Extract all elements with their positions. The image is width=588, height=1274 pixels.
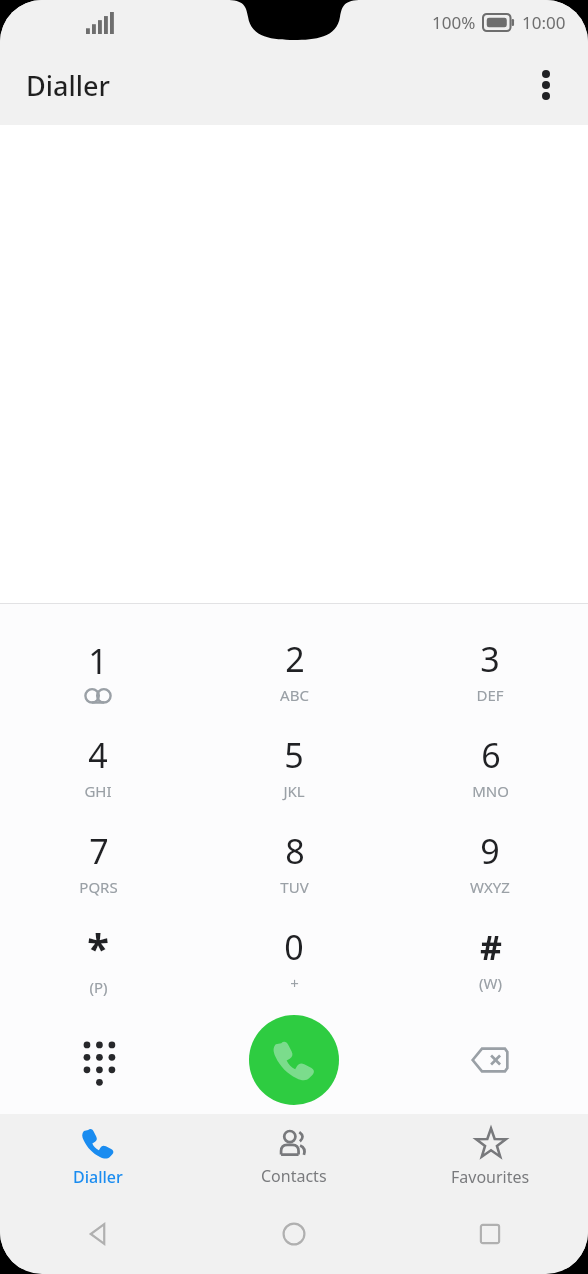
staticText: 1 (88, 638, 108, 684)
staticText: 10:00 (522, 11, 566, 34)
staticText: Dialler (73, 1166, 123, 1188)
staticText: 3 (480, 636, 500, 682)
staticText: (W) (479, 973, 502, 993)
staticText: 4 (88, 732, 108, 778)
button[interactable]: 3 (392, 622, 588, 718)
button[interactable]: 6 (392, 718, 588, 814)
staticText: # (480, 924, 502, 970)
staticText: 8 (285, 828, 305, 874)
staticText: 6 (481, 732, 501, 778)
staticText: 9 (480, 828, 500, 874)
button[interactable]: 1 (0, 622, 196, 718)
button[interactable]: Recent apps (392, 1199, 588, 1269)
button[interactable]: Dialler (0, 1114, 196, 1199)
button[interactable]: 8 (196, 814, 392, 910)
staticText: 0 (284, 924, 304, 970)
staticText: ABC (280, 685, 309, 705)
button[interactable]: 4 (0, 718, 196, 814)
staticText: MNO (472, 781, 509, 801)
button[interactable]: More options (522, 61, 570, 109)
staticText: (P) (89, 977, 108, 997)
staticText: 7 (89, 828, 109, 874)
button[interactable]: Home (196, 1199, 392, 1269)
staticText: DEF (476, 685, 504, 705)
button[interactable]: 7 (0, 814, 196, 910)
button[interactable]: Contacts (196, 1114, 392, 1199)
staticText: 2 (285, 636, 305, 682)
staticText: Favourites (451, 1166, 530, 1188)
staticText: Dialler (26, 67, 110, 104)
button[interactable]: 5 (196, 718, 392, 814)
staticText: TUV (280, 877, 309, 897)
staticText: WXYZ (470, 877, 510, 897)
staticText: Contacts (261, 1165, 327, 1187)
button[interactable]: 9 (392, 814, 588, 910)
staticText: 5 (284, 732, 304, 778)
staticText: * (87, 920, 109, 974)
staticText: 100% (432, 11, 476, 34)
staticText: JKL (283, 781, 305, 801)
staticText: GHI (84, 781, 112, 801)
button[interactable]: 2 (196, 622, 392, 718)
button[interactable]: Back (0, 1199, 196, 1269)
button[interactable]: # (392, 910, 588, 1006)
button[interactable]: * (0, 910, 196, 1006)
button[interactable]: 0 (196, 910, 392, 1006)
staticText: + (290, 973, 299, 993)
staticText: PQRS (79, 877, 118, 897)
button[interactable]: Backspace (392, 1006, 588, 1114)
button[interactable]: Dialpad (0, 1006, 196, 1114)
button[interactable]: Call (249, 1015, 339, 1105)
button[interactable]: Favourites (392, 1114, 588, 1199)
